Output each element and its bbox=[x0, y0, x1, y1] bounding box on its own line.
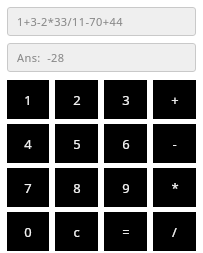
button[interactable]: c bbox=[55, 212, 98, 251]
staticText: = bbox=[122, 223, 130, 241]
button[interactable]: 6 bbox=[104, 124, 147, 163]
button[interactable]: Ans: -28 bbox=[7, 43, 196, 72]
button[interactable]: 1+3-2*33/11-70+44 bbox=[7, 7, 196, 36]
staticText: 9 bbox=[122, 179, 130, 197]
button[interactable]: 2 bbox=[55, 80, 98, 119]
staticText: 4 bbox=[24, 135, 32, 153]
staticText: * bbox=[171, 179, 179, 197]
button[interactable]: - bbox=[153, 124, 196, 163]
staticText: 7 bbox=[24, 179, 32, 197]
button[interactable]: 9 bbox=[104, 168, 147, 207]
staticText: 8 bbox=[73, 179, 81, 197]
staticText: 6 bbox=[122, 135, 130, 153]
button[interactable]: 5 bbox=[55, 124, 98, 163]
button[interactable]: 8 bbox=[55, 168, 98, 207]
staticText: 1+3-2*33/11-70+44 bbox=[17, 14, 123, 29]
button[interactable]: + bbox=[153, 80, 196, 119]
button[interactable]: = bbox=[104, 212, 147, 251]
staticText: - bbox=[172, 135, 177, 153]
staticText: 5 bbox=[73, 135, 81, 153]
button[interactable]: / bbox=[153, 212, 196, 251]
button[interactable]: 7 bbox=[7, 168, 49, 207]
staticText: 2 bbox=[73, 91, 81, 109]
staticText: 0 bbox=[24, 223, 32, 241]
staticText: + bbox=[171, 91, 179, 109]
button[interactable]: 1 bbox=[7, 80, 49, 119]
button[interactable]: 4 bbox=[7, 124, 49, 163]
button[interactable]: * bbox=[153, 168, 196, 207]
staticText: Ans: -28 bbox=[17, 50, 65, 65]
staticText: / bbox=[172, 223, 177, 241]
staticText: 1 bbox=[24, 91, 32, 109]
button[interactable]: 3 bbox=[104, 80, 147, 119]
button[interactable]: 0 bbox=[7, 212, 49, 251]
staticText: c bbox=[73, 223, 80, 241]
staticText: 3 bbox=[122, 91, 130, 109]
